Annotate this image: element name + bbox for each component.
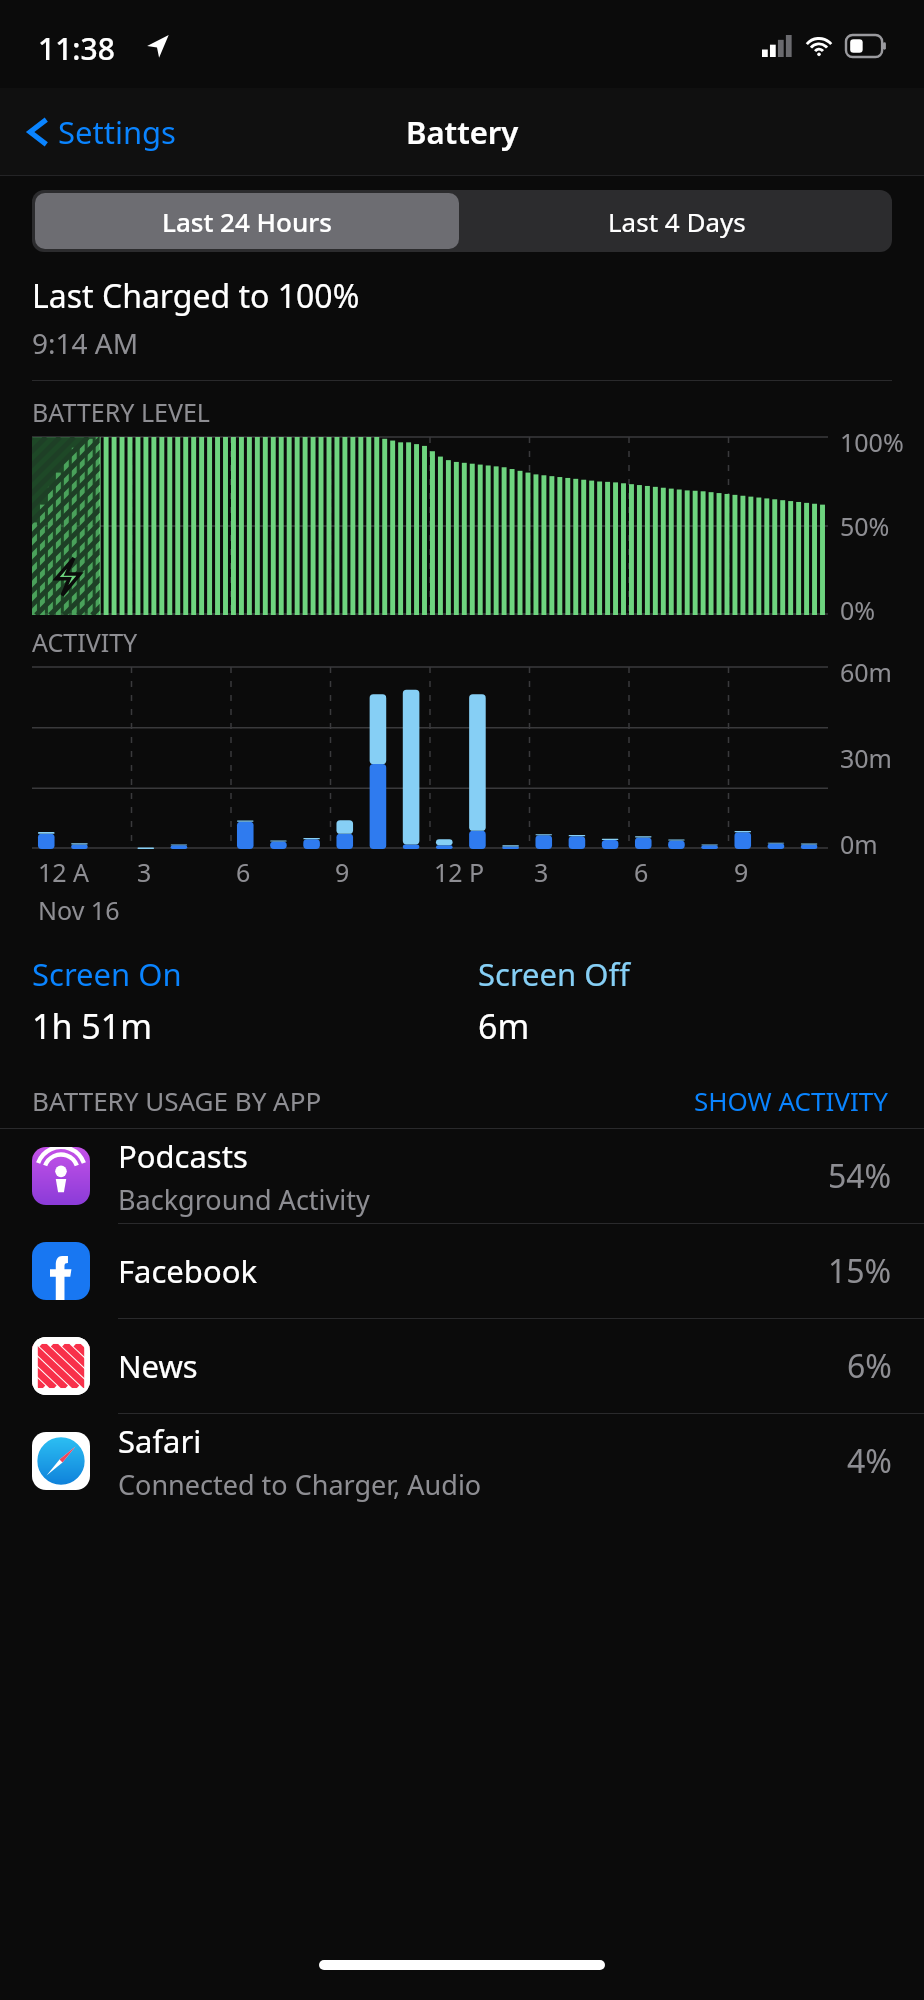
staticText: 9: [335, 855, 350, 889]
staticText: 9: [734, 855, 749, 889]
staticText: 54%: [828, 1154, 892, 1198]
button[interactable]: Last 24 Hours: [35, 193, 459, 249]
staticText: 60m: [840, 655, 892, 689]
staticText: 12 P: [434, 855, 485, 889]
staticText: 50%: [840, 509, 890, 543]
staticText: 4%: [847, 1439, 892, 1483]
staticText: Safari: [118, 1420, 202, 1462]
staticText: Connected to Charger, Audio: [118, 1466, 482, 1503]
button[interactable]: Podcasts: [0, 1129, 924, 1223]
staticText: 3: [137, 855, 152, 889]
staticText: Podcasts: [118, 1135, 248, 1177]
button[interactable]: Safari: [0, 1414, 924, 1508]
staticText: Screen On: [32, 953, 182, 995]
staticText: 100%: [840, 425, 904, 459]
staticText: Last 24 Hours: [162, 204, 332, 239]
staticText: BATTERY LEVEL: [32, 395, 210, 429]
button[interactable]: SHOW ACTIVITY: [690, 1079, 892, 1122]
button[interactable]: Settings: [22, 102, 180, 162]
staticText: Nov 16: [38, 893, 120, 927]
staticText: 1h 51m: [32, 1003, 152, 1049]
staticText: 11:38: [38, 28, 115, 69]
staticText: Battery: [406, 111, 519, 153]
staticText: 0m: [840, 827, 878, 861]
staticText: Last Charged to 100%: [32, 274, 360, 318]
staticText: ACTIVITY: [32, 625, 138, 659]
staticText: 6: [634, 855, 649, 889]
staticText: 6m: [478, 1003, 530, 1049]
staticText: Background Activity: [118, 1181, 370, 1218]
staticText: BATTERY USAGE BY APP: [32, 1083, 322, 1118]
staticText: Facebook: [118, 1250, 257, 1292]
staticText: Settings: [58, 111, 176, 153]
staticText: News: [118, 1345, 198, 1387]
staticText: 3: [534, 855, 549, 889]
staticText: Last 4 Days: [608, 204, 746, 239]
staticText: 30m: [840, 741, 892, 775]
staticText: 15%: [828, 1249, 892, 1293]
button[interactable]: Last 4 Days: [462, 190, 892, 252]
staticText: 6: [236, 855, 251, 889]
staticText: 6%: [847, 1344, 892, 1388]
staticText: 9:14 AM: [32, 324, 139, 362]
staticText: 12 A: [38, 855, 90, 889]
staticText: Screen Off: [478, 953, 630, 995]
button[interactable]: News: [0, 1319, 924, 1413]
button[interactable]: Facebook: [0, 1224, 924, 1318]
staticText: SHOW ACTIVITY: [694, 1083, 888, 1118]
staticText: 0%: [840, 593, 876, 627]
